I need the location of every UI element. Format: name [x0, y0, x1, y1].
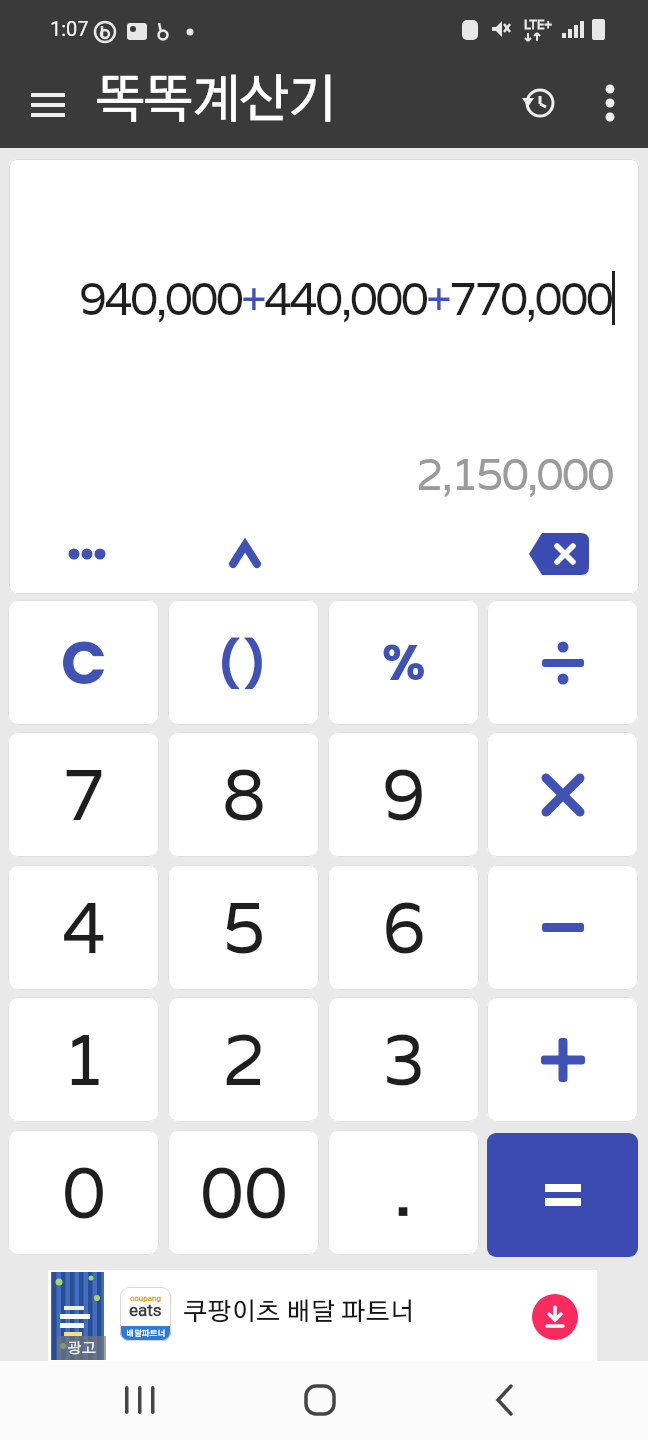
staticText: eats: [129, 1300, 162, 1320]
button[interactable]: [487, 600, 638, 725]
staticText: 배달파트너: [126, 1330, 166, 1338]
staticText: %: [382, 628, 426, 698]
button[interactable]: 00: [168, 1130, 319, 1255]
button[interactable]: 9: [328, 732, 479, 857]
button[interactable]: 7: [8, 732, 159, 857]
button[interactable]: coupang: [48, 1270, 597, 1361]
button[interactable]: .: [328, 1130, 479, 1255]
staticText: 940,000+440,000+770,000: [79, 269, 612, 327]
staticText: 2: [222, 1014, 266, 1105]
button[interactable]: 2: [168, 997, 319, 1122]
staticText: 똑똑계산기: [95, 76, 336, 128]
button[interactable]: 0: [8, 1130, 159, 1255]
staticText: 8: [222, 749, 266, 840]
staticText: 7: [62, 749, 106, 840]
button[interactable]: (): [168, 600, 319, 725]
button[interactable]: 1: [8, 997, 159, 1122]
staticText: 9: [382, 749, 426, 840]
staticText: C: [61, 621, 107, 705]
staticText: 4: [62, 882, 106, 973]
staticText: (): [218, 631, 270, 695]
button[interactable]: [585, 76, 635, 130]
staticText: 1: [62, 1014, 106, 1105]
staticText: 1:07: [50, 17, 89, 40]
button[interactable]: [532, 1294, 578, 1340]
button[interactable]: 8: [168, 732, 319, 857]
staticText: 광고: [67, 1341, 96, 1356]
button[interactable]: 4: [8, 865, 159, 990]
staticText: .: [395, 1152, 412, 1233]
staticText: 00: [200, 1147, 288, 1238]
staticText: 2,150,000: [416, 445, 613, 502]
button[interactable]: [487, 997, 638, 1122]
button[interactable]: 3: [328, 997, 479, 1122]
button[interactable]: [487, 1133, 638, 1257]
button[interactable]: [487, 732, 638, 857]
staticText: LTE+: [524, 17, 552, 32]
button[interactable]: [47, 529, 127, 579]
button[interactable]: [100, 1366, 180, 1434]
staticText: coupang: [130, 1294, 161, 1303]
button[interactable]: [18, 80, 78, 130]
button[interactable]: [465, 1366, 545, 1434]
button[interactable]: [280, 1366, 360, 1434]
staticText: 3: [382, 1014, 426, 1105]
button[interactable]: [215, 529, 275, 579]
staticText: 0: [62, 1147, 106, 1238]
button[interactable]: 5: [168, 865, 319, 990]
staticText: 6: [382, 882, 426, 973]
staticText: 5: [222, 882, 266, 973]
button[interactable]: 6: [328, 865, 479, 990]
button[interactable]: C: [8, 600, 159, 725]
button[interactable]: [487, 865, 638, 990]
button[interactable]: [512, 76, 566, 130]
button[interactable]: [525, 529, 595, 579]
staticText: 쿠팡이츠 배달 파트너: [183, 1300, 415, 1325]
button[interactable]: %: [328, 600, 479, 725]
